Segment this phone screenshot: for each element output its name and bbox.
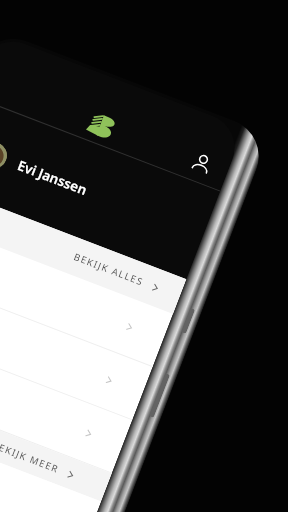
staticText: Evi Janssen <box>15 156 90 199</box>
button[interactable]: BEKIJK ALLES <box>72 250 161 295</box>
button[interactable]: BEKIJK MEER <box>0 377 112 502</box>
staticText: BEKIJK MEER <box>0 438 61 476</box>
button[interactable] <box>0 324 132 473</box>
button[interactable]: Account <box>185 146 219 180</box>
button[interactable] <box>0 271 153 419</box>
button[interactable]: Evi Janssen <box>0 95 220 279</box>
button[interactable] <box>0 217 173 366</box>
staticText: BEKIJK ALLES <box>72 250 146 289</box>
